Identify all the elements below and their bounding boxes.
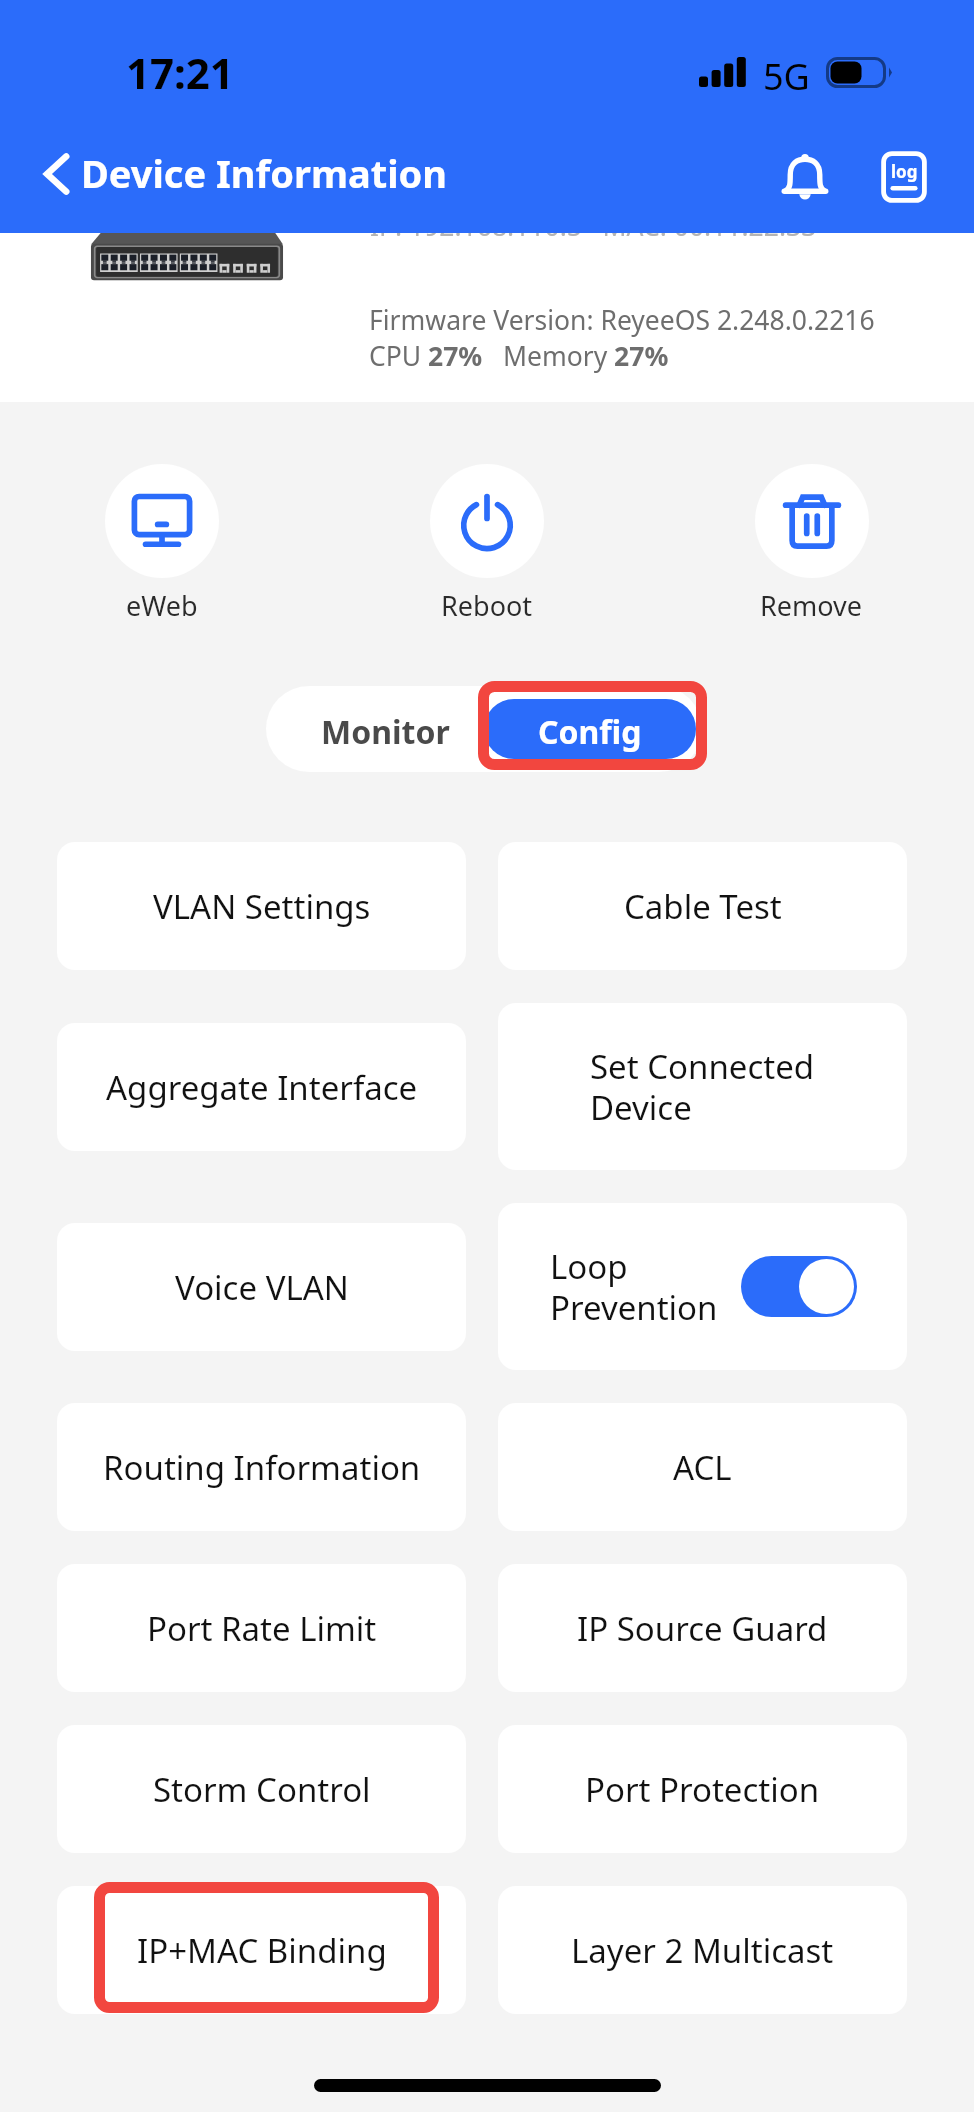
staticText: IP: 192.168.110.5 MAC: 00:11:22:33 xyxy=(370,208,817,244)
staticText: Storm Control xyxy=(153,1767,371,1812)
staticText: Port Rate Limit xyxy=(147,1606,377,1651)
button[interactable]: Reboot xyxy=(324,464,649,624)
button[interactable]: Monitor xyxy=(272,699,484,759)
staticText: Device Information xyxy=(81,147,448,199)
staticText: Port Protection xyxy=(585,1767,820,1812)
staticText: eWeb xyxy=(126,587,198,624)
button[interactable]: VLAN Settings xyxy=(57,842,466,970)
staticText: Firmware Version: ReyeeOS 2.248.0.2216 xyxy=(369,302,875,338)
staticText: log xyxy=(891,160,918,183)
staticText: Reboot xyxy=(441,587,533,624)
button[interactable]: Routing Information xyxy=(57,1403,466,1531)
button[interactable]: Loop Prevention xyxy=(498,1203,907,1370)
button[interactable]: Cable Test xyxy=(498,842,907,970)
other: Back xyxy=(40,154,72,194)
staticText: Voice VLAN xyxy=(175,1265,349,1310)
staticText: Loop Prevention xyxy=(550,1244,741,1330)
staticText: IP Source Guard xyxy=(577,1606,828,1651)
button[interactable]: Port Protection xyxy=(498,1725,907,1853)
button[interactable]: eWeb xyxy=(0,464,324,624)
button[interactable]: Set Connected Device xyxy=(498,1003,907,1170)
button[interactable]: Loop Prevention toggle xyxy=(741,1256,857,1317)
staticText: 17:21 xyxy=(126,44,234,101)
button[interactable]: IP Source Guard xyxy=(498,1564,907,1692)
button[interactable]: Config xyxy=(484,699,696,759)
button[interactable]: Storm Control xyxy=(57,1725,466,1853)
staticText: ACL xyxy=(673,1445,732,1490)
staticText: Config xyxy=(538,710,642,754)
button[interactable]: Layer 2 Multicast xyxy=(498,1886,907,2014)
staticText: Cable Test xyxy=(624,884,782,929)
button[interactable]: Notifications xyxy=(771,143,839,211)
staticText: Layer 2 Multicast xyxy=(571,1928,834,1973)
staticText: Remove xyxy=(760,587,863,624)
staticText: Set Connected Device xyxy=(590,1044,815,1130)
staticText: Aggregate Interface xyxy=(106,1065,418,1110)
button[interactable]: Logs xyxy=(870,143,938,211)
staticText: Routing Information xyxy=(103,1445,421,1490)
button[interactable]: Aggregate Interface xyxy=(57,1023,466,1151)
staticText: CPU 27% Memory 27% xyxy=(369,338,669,374)
button[interactable]: IP+MAC Binding xyxy=(57,1886,466,2014)
button[interactable]: Back xyxy=(29,147,448,199)
staticText: VLAN Settings xyxy=(153,884,371,929)
button[interactable]: ACL xyxy=(498,1403,907,1531)
staticText: 5G xyxy=(763,52,810,101)
button[interactable]: Remove xyxy=(649,464,974,624)
staticText: Monitor xyxy=(321,710,450,754)
button[interactable]: Port Rate Limit xyxy=(57,1564,466,1692)
staticText: IP+MAC Binding xyxy=(137,1928,387,1973)
button[interactable]: Voice VLAN xyxy=(57,1223,466,1351)
